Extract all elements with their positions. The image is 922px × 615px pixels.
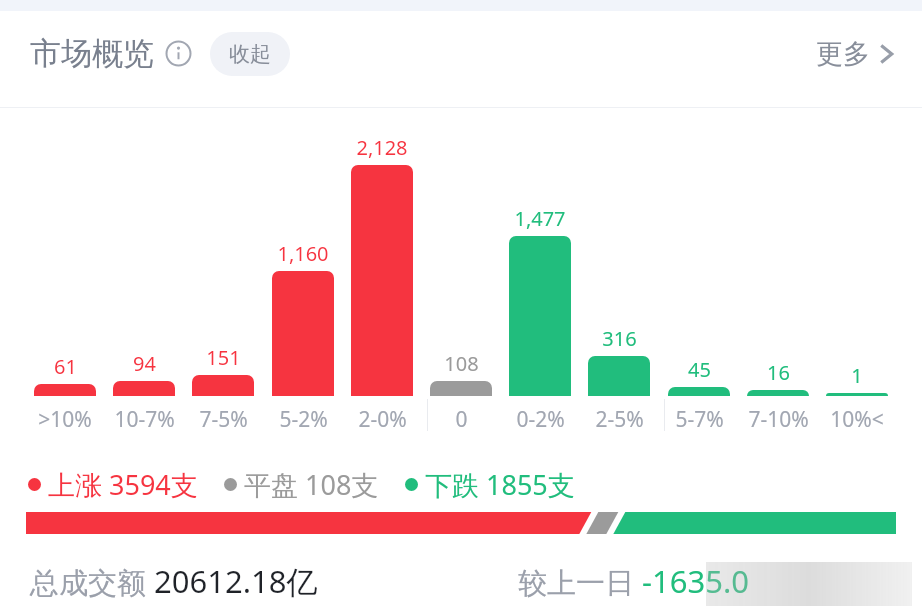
button[interactable] — [588, 356, 650, 396]
staticText: 更多 — [816, 37, 870, 71]
button[interactable]: 下跌 1855支 — [405, 466, 575, 503]
button[interactable] — [34, 384, 96, 396]
button[interactable] — [747, 390, 809, 396]
button[interactable] — [351, 165, 413, 396]
staticText: 316 — [602, 325, 637, 352]
staticText: 5-7% — [675, 405, 724, 434]
staticText: 1 — [851, 362, 863, 389]
staticText: 45 — [688, 356, 711, 383]
staticText: 下跌 1855支 — [425, 466, 575, 503]
button[interactable] — [26, 512, 896, 534]
staticText: 1,160 — [277, 240, 329, 267]
staticText: 2,128 — [356, 134, 408, 161]
staticText: 平盘 108支 — [244, 466, 379, 503]
button[interactable] — [668, 387, 730, 396]
staticText: 5-2% — [279, 405, 328, 434]
staticText: 1,477 — [514, 205, 566, 232]
button[interactable] — [430, 381, 492, 396]
staticText: 0-2% — [516, 405, 565, 434]
staticText: 7-10% — [748, 405, 809, 434]
staticText: 收起 — [229, 41, 271, 67]
button[interactable] — [509, 236, 571, 396]
staticText: >10% — [38, 405, 92, 434]
staticText: 较上一日 — [518, 562, 642, 602]
staticText: 2-5% — [595, 405, 644, 434]
staticText: 10-7% — [114, 405, 175, 434]
staticText: 2-0% — [358, 405, 407, 434]
staticText: 151 — [206, 344, 241, 371]
staticText: 上涨 3594支 — [48, 466, 198, 503]
staticText: 94 — [133, 350, 156, 377]
button[interactable] — [826, 393, 888, 396]
staticText: 市场概览 — [30, 34, 154, 73]
staticText: 20612.18亿 — [154, 560, 318, 602]
staticText: 总成交额 — [30, 562, 154, 602]
staticText: 7-5% — [199, 405, 248, 434]
button[interactable]: 平盘 108支 — [224, 466, 379, 503]
button[interactable]: 上涨 3594支 — [28, 466, 198, 503]
staticText: 16 — [767, 359, 790, 386]
button[interactable] — [192, 375, 254, 396]
button[interactable] — [113, 381, 175, 396]
staticText: 0 — [455, 405, 468, 434]
button[interactable]: 收起 — [210, 32, 290, 76]
button[interactable] — [272, 271, 334, 396]
staticText: 61 — [54, 353, 77, 380]
staticText: -1635.0 — [642, 560, 749, 602]
staticText: 10%< — [830, 405, 884, 434]
button[interactable]: Info — [165, 40, 192, 67]
button[interactable]: 更多 — [812, 27, 898, 81]
staticText: 108 — [444, 350, 479, 377]
